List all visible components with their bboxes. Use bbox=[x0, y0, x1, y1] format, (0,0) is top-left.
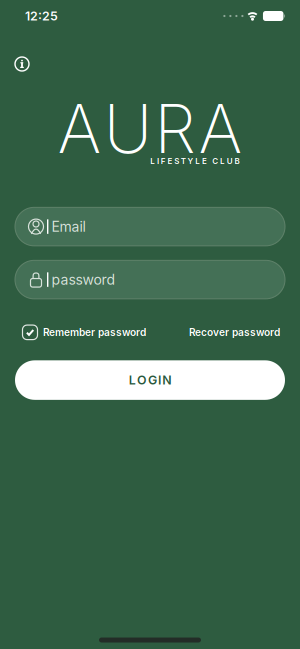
staticText: C bbox=[212, 156, 218, 166]
button[interactable]: L bbox=[15, 360, 285, 400]
staticText: L bbox=[129, 373, 136, 388]
staticText: I bbox=[158, 373, 161, 388]
staticText: F bbox=[161, 156, 166, 166]
staticText: I bbox=[157, 156, 159, 166]
staticText: password bbox=[51, 271, 115, 288]
staticText: N bbox=[162, 373, 171, 388]
staticText: B bbox=[234, 156, 239, 166]
staticText: U bbox=[104, 88, 152, 169]
staticText: S bbox=[174, 156, 179, 166]
staticText: G bbox=[148, 373, 157, 388]
staticText: E bbox=[167, 156, 172, 166]
button[interactable]: Recover password bbox=[189, 326, 280, 338]
button[interactable]: Remember password bbox=[22, 325, 146, 340]
staticText: U bbox=[227, 156, 233, 166]
button[interactable]: password bbox=[15, 260, 285, 299]
staticText: Recover password bbox=[189, 326, 280, 338]
staticText: O bbox=[137, 373, 147, 388]
staticText: L bbox=[150, 156, 155, 166]
button[interactable]: Info bbox=[6, 48, 38, 80]
staticText: Email bbox=[51, 218, 85, 235]
staticText: Y bbox=[188, 156, 194, 166]
staticText: L bbox=[195, 156, 200, 166]
staticText: Remember password bbox=[43, 326, 146, 338]
staticText: L bbox=[220, 156, 225, 166]
button[interactable]: Email bbox=[15, 207, 285, 246]
staticText: R bbox=[154, 88, 196, 169]
staticText: E bbox=[202, 156, 207, 166]
staticText: A bbox=[57, 88, 101, 169]
staticText: A bbox=[198, 88, 242, 169]
staticText: T bbox=[181, 156, 186, 166]
staticText: 12:25 bbox=[25, 8, 58, 23]
